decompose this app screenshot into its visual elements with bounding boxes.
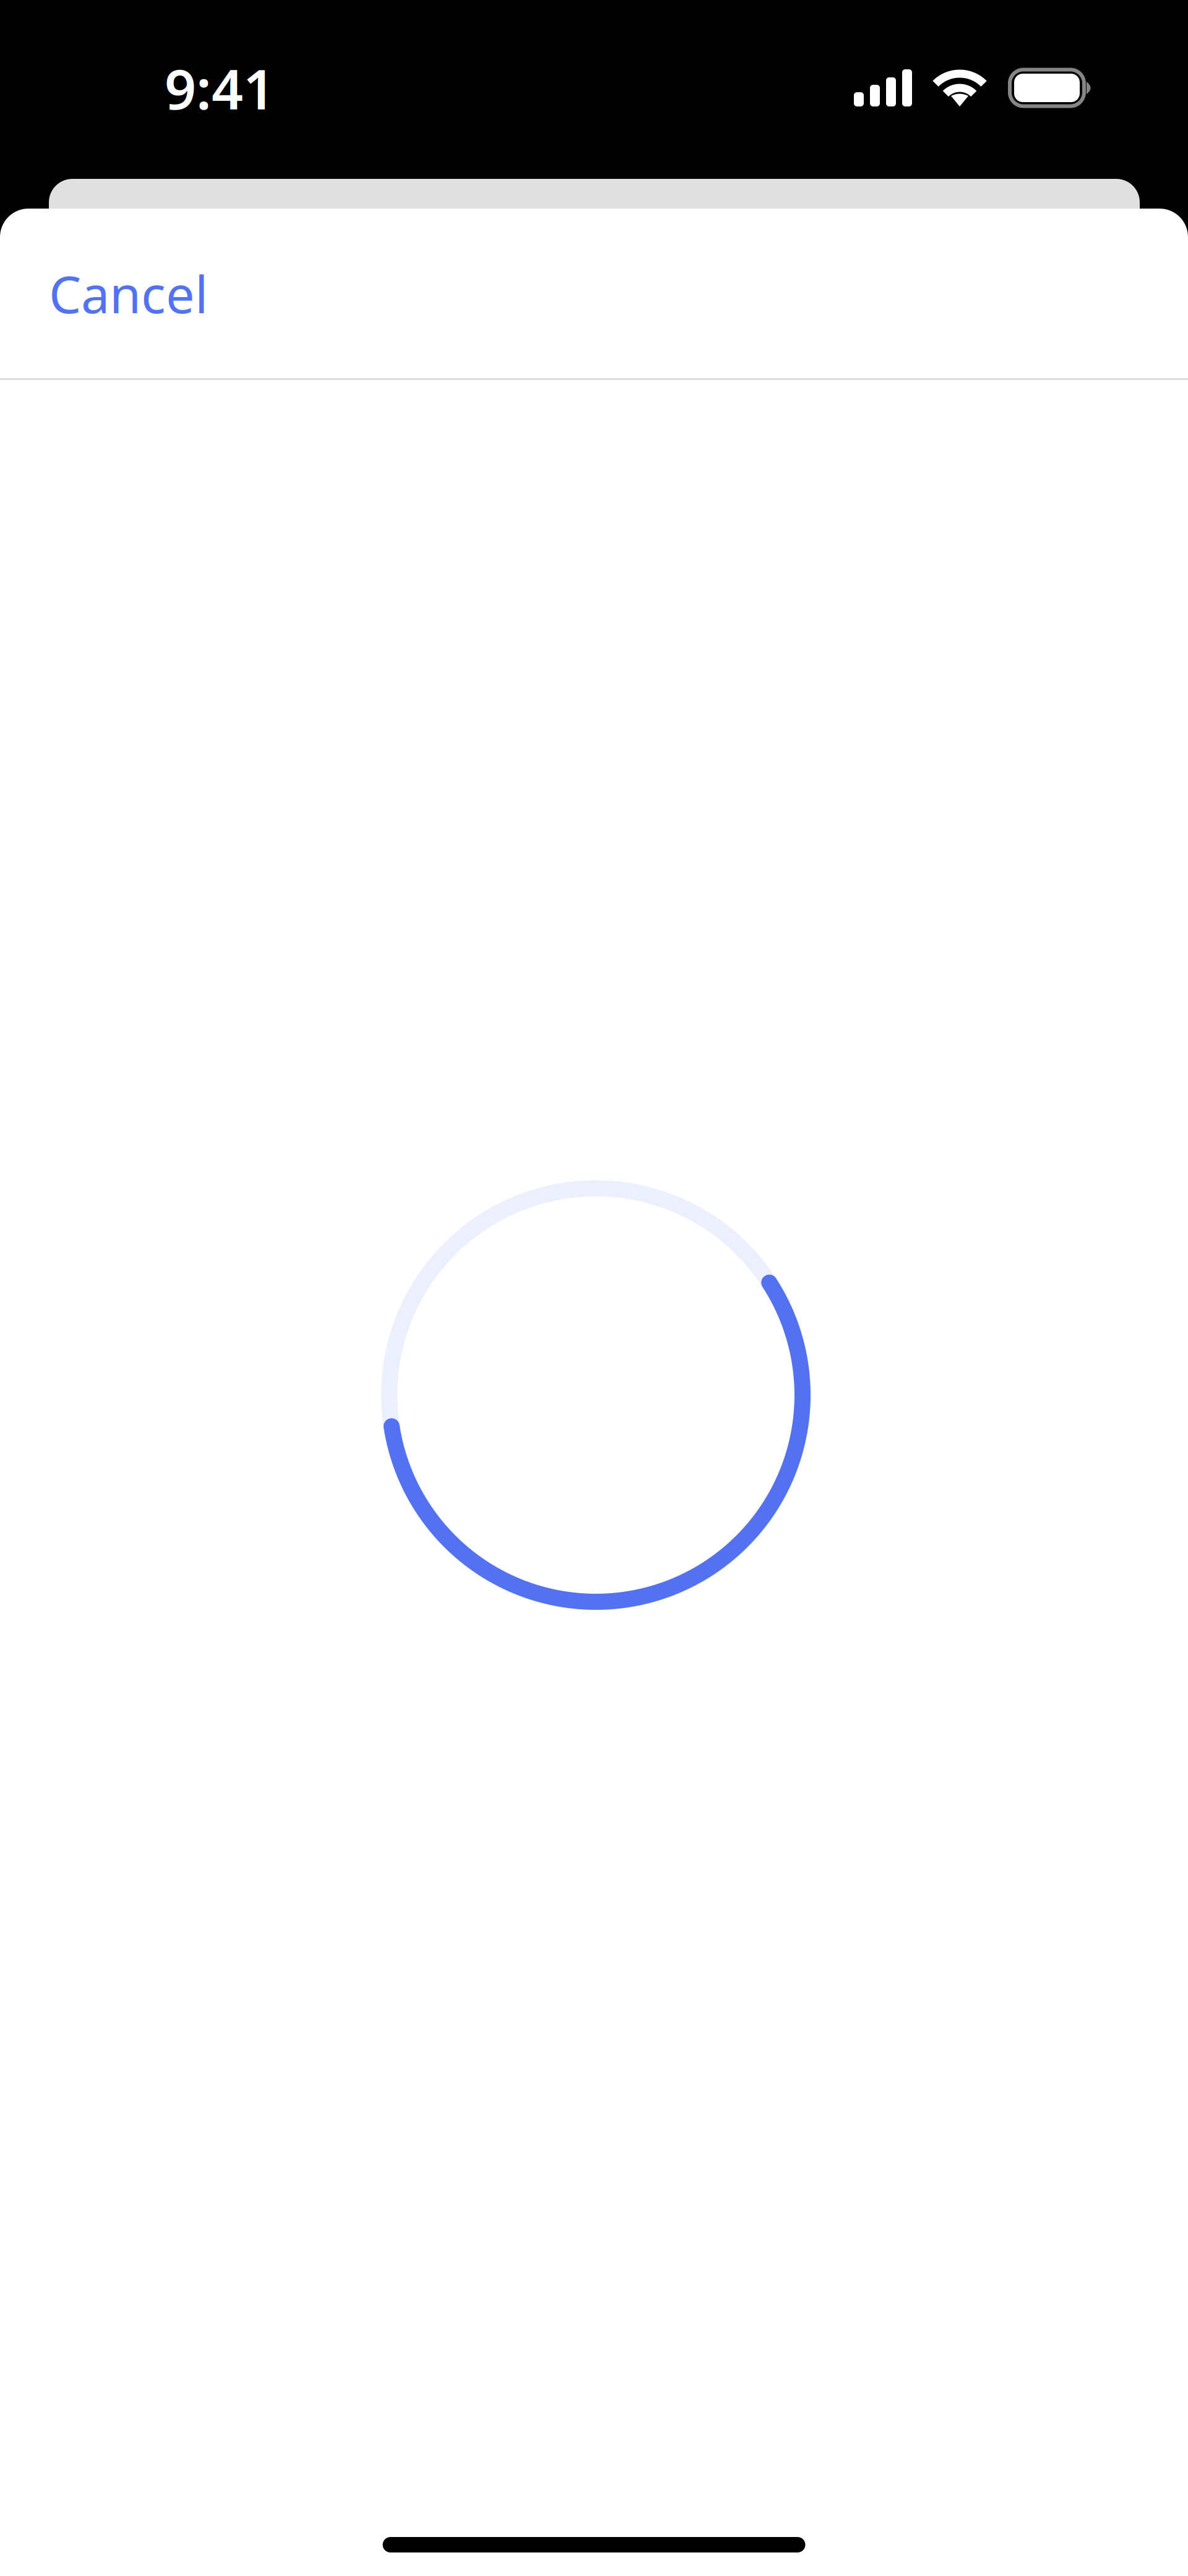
staticText: 9:41 [165, 51, 275, 125]
button[interactable]: Cancel [0, 212, 251, 374]
staticText: Cancel [49, 259, 208, 327]
